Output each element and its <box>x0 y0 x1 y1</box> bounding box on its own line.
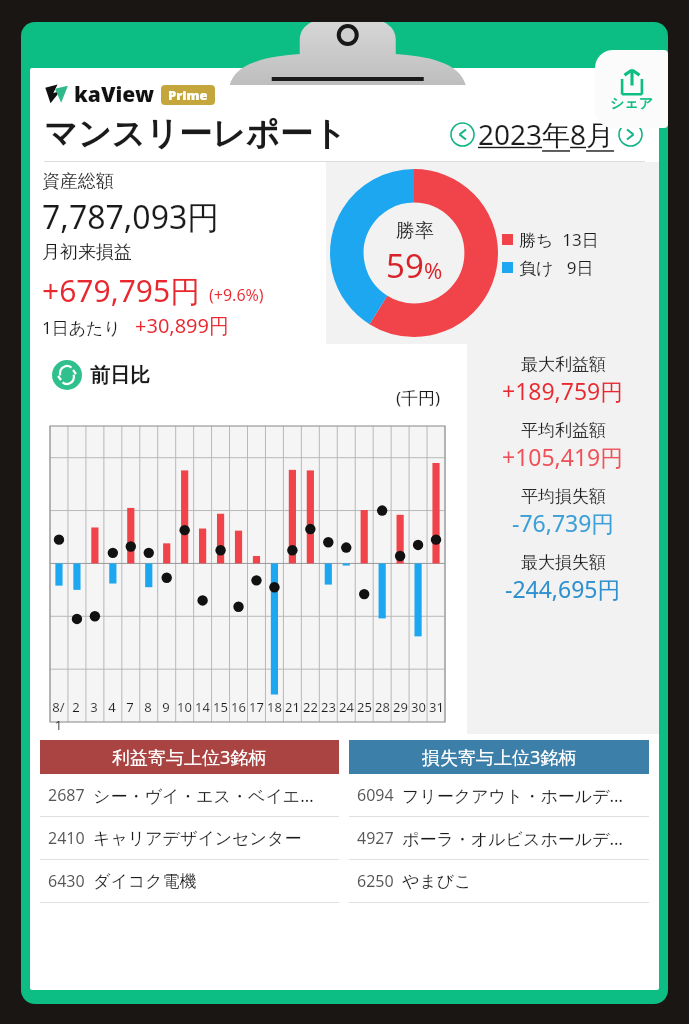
staticText: 負け 9日 <box>519 256 594 279</box>
staticText: 17 <box>249 698 264 716</box>
staticText: 2687 <box>48 784 85 806</box>
staticText: 最大利益額 <box>521 354 606 375</box>
button[interactable]: 2687 <box>40 774 339 817</box>
staticText: 59 <box>386 243 424 288</box>
button[interactable]: 翌月 <box>618 122 643 147</box>
staticText: 前日比 <box>90 363 150 388</box>
staticText: 3 <box>90 698 98 716</box>
staticText: 15 <box>213 698 228 716</box>
button[interactable]: 前日比 <box>52 360 154 390</box>
button[interactable]: 損失寄与上位3銘柄 <box>349 740 649 774</box>
staticText: 資産総額 <box>42 170 114 193</box>
staticText: 29 <box>393 698 408 716</box>
staticText: -76,739円 <box>512 507 615 538</box>
staticText: Prime <box>168 86 208 104</box>
staticText: シェア <box>610 95 653 113</box>
staticText: 25 <box>357 698 372 716</box>
button[interactable]: 利益寄与上位3銘柄 <box>40 740 339 774</box>
staticText: 月初来損益 <box>42 241 132 264</box>
staticText: 2 <box>72 698 80 716</box>
staticText: 損失寄与上位3銘柄 <box>422 745 577 770</box>
staticText: 7,787,093円 <box>42 195 220 239</box>
staticText: マンスリーレポート <box>44 113 347 155</box>
staticText: 平均利益額 <box>521 420 606 441</box>
staticText: 21 <box>285 698 300 716</box>
staticText: 勝ち 13日 <box>519 228 599 251</box>
staticText: -244,695円 <box>505 573 621 604</box>
staticText: 最大損失額 <box>521 552 606 573</box>
staticText: 14 <box>195 698 210 716</box>
button[interactable]: 6430 <box>40 860 339 903</box>
staticText: 8 <box>144 698 152 716</box>
staticText: フリークアウト・ホールデ… <box>402 784 624 807</box>
staticText: シー・ヴイ・エス・ベイエ… <box>93 784 314 807</box>
staticText: 30 <box>411 698 426 716</box>
staticText: ダイコク電機 <box>93 871 197 892</box>
button[interactable]: 前月 <box>450 122 475 147</box>
staticText: kaView <box>74 80 154 109</box>
staticText: 2410 <box>48 827 85 849</box>
staticText: ポーラ・オルビスホールデ… <box>402 827 624 850</box>
staticText: 9 <box>162 698 170 716</box>
button[interactable]: シェア <box>595 50 668 128</box>
button[interactable]: 4927 <box>349 817 649 860</box>
staticText: 6094 <box>357 784 394 806</box>
staticText: 6250 <box>357 870 394 892</box>
staticText: 31 <box>429 698 444 716</box>
staticText: 勝率 <box>396 219 434 243</box>
staticText: 平均損失額 <box>521 486 606 507</box>
staticText: 6430 <box>48 870 85 892</box>
staticText: % <box>424 255 443 285</box>
staticText: 22 <box>303 698 318 716</box>
staticText: 4927 <box>357 827 394 849</box>
staticText: やまびこ <box>402 871 472 892</box>
staticText: (+9.6%) <box>209 284 264 306</box>
staticText: (千円) <box>396 386 441 409</box>
staticText: +189,759円 <box>502 375 624 406</box>
staticText: 18 <box>267 698 282 716</box>
staticText: 1日あたり <box>42 316 121 339</box>
staticText: 10 <box>177 698 192 716</box>
staticText: 7 <box>126 698 134 716</box>
staticText: 23 <box>321 698 336 716</box>
staticText: +30,899円 <box>135 312 229 339</box>
staticText: 利益寄与上位3銘柄 <box>112 745 267 770</box>
staticText: 16 <box>231 698 246 716</box>
staticText: 4 <box>108 698 116 716</box>
staticText: +105,419円 <box>502 441 624 472</box>
staticText: 28 <box>375 698 390 716</box>
staticText: キャリアデザインセンター <box>93 828 302 849</box>
button[interactable]: 6094 <box>349 774 649 817</box>
button[interactable]: 6250 <box>349 860 649 903</box>
staticText: +679,795円 <box>42 270 201 311</box>
button[interactable]: 2023年8月 <box>478 115 615 153</box>
button[interactable]: 2410 <box>40 817 339 860</box>
staticText: 24 <box>339 698 354 716</box>
staticText: 8/1 <box>50 698 67 734</box>
